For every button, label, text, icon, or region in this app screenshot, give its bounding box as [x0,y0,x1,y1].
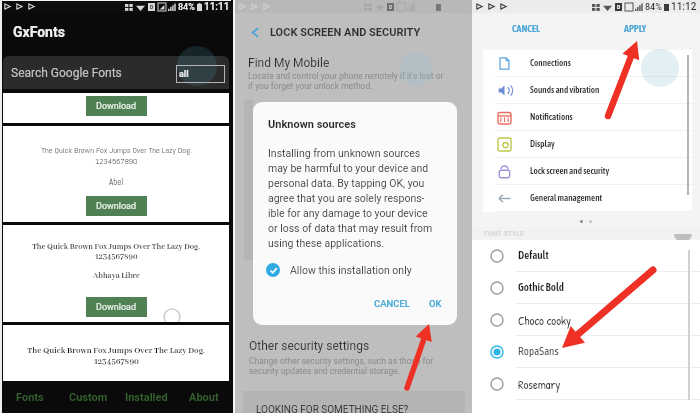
button[interactable]: Download [86,196,147,216]
staticText: Unknown sources [268,118,356,131]
staticText: General management [530,193,603,203]
staticText: Choco cooky [518,312,572,328]
button[interactable]: Search Google Fonts [3,56,229,89]
button[interactable]: CANCEL [512,23,540,34]
button[interactable]: The Quick Brown Fox Jumps Over The Lazy … [3,126,229,222]
button[interactable]: Download [86,96,147,116]
button[interactable]: OK [429,298,442,309]
staticText: D [150,4,154,10]
button[interactable]: Connections [483,50,692,76]
staticText: Other security settings [249,339,370,353]
button[interactable]: The Quick Brown Fox Jumps Over The Lazy … [3,225,229,322]
staticText: Installed [125,391,168,404]
staticText: 11:12 [671,1,697,13]
staticText: Download [96,302,137,313]
staticText: D [389,4,393,10]
staticText: Allow this installation only [290,264,412,276]
staticText: About [189,391,219,404]
button[interactable]: General management [483,185,692,211]
staticText: APPLY [624,23,647,34]
button[interactable]: Custom [59,382,117,413]
button[interactable]: Default [472,240,700,271]
button[interactable]: all [176,65,225,83]
staticText: GxFonts [13,24,65,40]
staticText: The Quick Brown Fox Jumps Over The Lazy … [27,345,205,356]
staticText: 11:11 [204,1,230,13]
staticText: CANCEL [374,298,410,309]
staticText: Lock screen and security [530,166,610,176]
staticText: LOCK SCREEN AND SECURITY [270,26,421,39]
button[interactable]: About [175,382,233,413]
button[interactable]: Download [3,93,229,123]
staticText: The Quick Brown Fox Jumps Over The Lazy … [32,242,200,252]
button[interactable]: Lock screen and security [483,158,692,184]
staticText: Gothic Bold [518,281,565,294]
button[interactable]: Notifications [483,104,692,130]
staticText: 1234567890 [94,356,139,367]
staticText: Change other security settings, such as … [249,356,434,376]
button[interactable]: The Quick Brown Fox Jumps Over The Lazy … [3,325,229,381]
staticText: 84% [178,2,195,13]
staticText: Locate and control your phone remotely i… [248,71,444,91]
staticText: Fonts [16,391,44,404]
staticText: CANCEL [512,23,540,34]
staticText: Custom [69,391,108,404]
button[interactable]: Back [247,24,263,40]
staticText: Notifications [530,112,573,122]
staticText: Installing from unknown sources may be h… [268,147,433,249]
staticText: The Quick Brown Fox Jumps Over The Lazy … [41,145,192,156]
staticText: Abhaya Libre [93,271,140,281]
staticText: Download [96,201,137,212]
button[interactable]: Display [483,131,692,157]
staticText: Rosemary [518,376,561,392]
button[interactable]: Fonts [0,382,59,413]
staticText: Find My Mobile [248,56,330,70]
button[interactable]: Installed [117,382,175,413]
staticText: Abel [109,176,124,187]
staticText: 1234567890 [95,156,138,167]
staticText: Search Google Fonts [11,66,122,80]
button[interactable]: Gothic Bold [472,272,700,303]
staticText: D [617,4,621,10]
staticText: RopaSans [518,346,559,358]
staticText: Sounds and vibration [530,85,600,95]
staticText: Download [96,101,137,112]
button[interactable]: Choco cooky [472,304,700,335]
staticText: Connections [530,58,571,68]
staticText: Default [518,249,549,262]
staticText: 1234567890 [95,252,138,262]
staticText: all [179,69,189,80]
staticText: OK [429,298,442,309]
staticText: LOOKING FOR SOMETHING ELSE? [256,404,409,413]
button[interactable]: RopaSans [472,336,700,367]
staticText: Display [530,139,555,149]
button[interactable]: Sounds and vibration [483,77,692,103]
staticText: 84% [645,2,662,13]
button[interactable]: APPLY [624,23,647,34]
button[interactable]: CANCEL [374,298,410,309]
staticText: FONT STYLE [484,230,525,238]
button[interactable]: Rosemary [472,368,700,399]
button[interactable]: Download [86,297,147,317]
button[interactable]: Allow this installation only [266,263,412,277]
